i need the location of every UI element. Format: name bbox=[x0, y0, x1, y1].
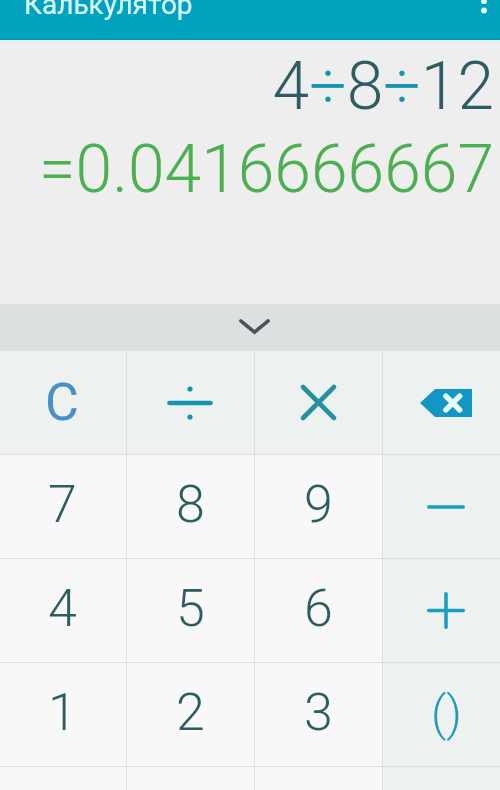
button[interactable]: 7 bbox=[0, 455, 126, 558]
staticText: C bbox=[45, 372, 79, 433]
button[interactable]: Parentheses bbox=[382, 663, 500, 766]
button[interactable]: Clear bbox=[0, 351, 126, 454]
staticText: 2 bbox=[176, 682, 205, 743]
button[interactable]: Divide bbox=[126, 351, 254, 454]
button[interactable]: 3 bbox=[254, 663, 382, 766]
staticText: 5 bbox=[176, 578, 205, 639]
staticText: 4 bbox=[48, 578, 77, 639]
staticText: 3 bbox=[304, 682, 333, 743]
staticText: 4÷8÷12 bbox=[0, 48, 494, 125]
button[interactable]: 5 bbox=[126, 559, 254, 662]
button[interactable]: 9 bbox=[254, 455, 382, 558]
button[interactable]: Backspace bbox=[382, 351, 500, 454]
staticText: () bbox=[431, 685, 462, 741]
staticText: =0.0416666667 bbox=[0, 131, 494, 208]
button[interactable]: 4 bbox=[0, 559, 126, 662]
staticText: 7 bbox=[48, 474, 77, 535]
button[interactable]: Collapse keypad bbox=[0, 304, 500, 351]
button[interactable]: Minus bbox=[382, 455, 500, 558]
button[interactable]: 6 bbox=[254, 559, 382, 662]
staticText: Калькулятор bbox=[24, 0, 193, 21]
button[interactable]: 2 bbox=[126, 663, 254, 766]
button[interactable]: More options bbox=[458, 0, 500, 39]
button[interactable]: Multiply bbox=[254, 351, 382, 454]
button[interactable]: 1 bbox=[0, 663, 126, 766]
button[interactable]: Plus bbox=[382, 559, 500, 662]
staticText: 1 bbox=[48, 682, 77, 743]
staticText: 6 bbox=[304, 578, 333, 639]
button[interactable]: 8 bbox=[126, 455, 254, 558]
staticText: 9 bbox=[304, 474, 333, 535]
staticText: 8 bbox=[176, 474, 205, 535]
